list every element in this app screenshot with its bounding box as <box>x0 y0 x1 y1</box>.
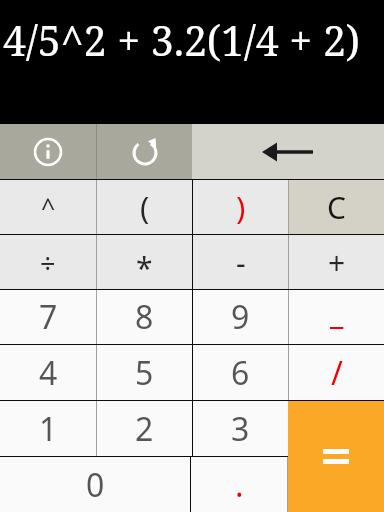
staticText: 8 <box>135 295 154 339</box>
staticText: - <box>236 242 246 283</box>
button[interactable]: Backspace <box>192 124 384 179</box>
button[interactable]: ) <box>193 180 288 234</box>
button[interactable]: / <box>289 345 384 400</box>
staticText: / <box>331 351 343 395</box>
button[interactable]: 3 <box>193 401 288 456</box>
staticText: + <box>328 242 346 283</box>
button[interactable]: Equals <box>288 401 384 512</box>
button[interactable]: Redo <box>97 124 192 179</box>
staticText: C <box>327 187 346 228</box>
button[interactable]: 5 <box>97 345 192 400</box>
button[interactable]: ÷ <box>0 235 96 289</box>
staticText: 6 <box>231 351 250 395</box>
button[interactable]: C <box>289 180 384 234</box>
button[interactable]: + <box>289 235 384 289</box>
button[interactable]: * <box>97 235 192 289</box>
staticText: _ <box>330 292 344 333</box>
button[interactable]: ( <box>97 180 192 234</box>
staticText: 0 <box>86 463 105 507</box>
button[interactable]: 7 <box>0 290 96 344</box>
staticText: 3 <box>231 407 250 451</box>
button[interactable]: - <box>193 235 288 289</box>
staticText: 1 <box>39 407 58 451</box>
staticText: ÷ <box>40 244 56 281</box>
button[interactable]: _ <box>289 290 384 344</box>
staticText: 4 <box>39 351 58 395</box>
button[interactable]: 9 <box>193 290 288 344</box>
staticText: ) <box>236 186 246 228</box>
staticText: ( <box>140 186 150 228</box>
button[interactable]: 6 <box>193 345 288 400</box>
button[interactable]: 8 <box>97 290 192 344</box>
staticText: * <box>136 247 153 288</box>
button[interactable]: Info <box>0 124 96 179</box>
button[interactable]: . <box>191 457 287 512</box>
button[interactable]: 0 <box>0 457 190 512</box>
staticText: ^ <box>41 190 56 224</box>
button[interactable]: 1 <box>0 401 96 456</box>
button[interactable]: 2 <box>97 401 192 456</box>
staticText: 7 <box>39 295 58 339</box>
button[interactable]: 4 <box>0 345 96 400</box>
staticText: 2 <box>135 407 154 451</box>
staticText: 5 <box>135 351 154 395</box>
staticText: . <box>235 463 244 507</box>
staticText: 9 <box>231 295 250 339</box>
staticText: 4/5^2 + 3.2(1/4 + 2) <box>3 12 360 68</box>
button[interactable]: ^ <box>0 180 96 234</box>
